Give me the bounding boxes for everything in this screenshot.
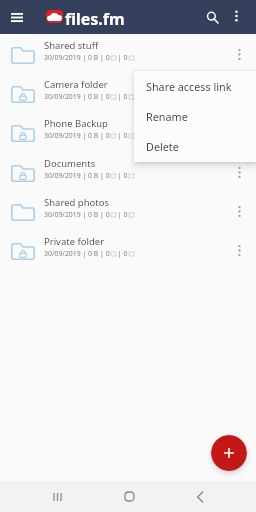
- staticText: Private folder: [44, 235, 105, 248]
- staticText: | 0: [116, 171, 128, 180]
- button[interactable]: More options: [223, 2, 250, 29]
- staticText: | 0: [116, 92, 128, 101]
- staticText: Rename: [146, 109, 188, 124]
- staticText: 30/09/2019 | 0 B | 0: [44, 131, 110, 140]
- button[interactable]: Shared stuff: [0, 34, 256, 73]
- button[interactable]: Phone Backup: [0, 112, 256, 151]
- staticText: Shared photos: [44, 196, 110, 209]
- staticText: | 0: [116, 131, 128, 140]
- button[interactable]: Share access link: [134, 71, 256, 101]
- button[interactable]: Item options: [228, 156, 250, 188]
- staticText: 30/09/2019 | 0 B | 0: [44, 210, 110, 219]
- button[interactable]: Back: [180, 481, 220, 512]
- button[interactable]: Home: [109, 481, 149, 512]
- button[interactable]: Item options: [228, 38, 250, 70]
- staticText: Share access link: [146, 79, 232, 94]
- staticText: Phone Backup: [44, 117, 108, 130]
- staticText: | 0: [116, 210, 128, 219]
- button[interactable]: Private folder: [0, 230, 256, 269]
- button[interactable]: Rename: [134, 101, 256, 131]
- button[interactable]: Camera folder: [0, 73, 256, 112]
- staticText: 30/09/2019 | 0 B | 0: [44, 92, 110, 101]
- button[interactable]: Item options: [228, 77, 250, 109]
- staticText: Documents: [44, 157, 96, 170]
- button[interactable]: Item options: [228, 234, 250, 266]
- button[interactable]: Delete: [134, 131, 256, 161]
- button[interactable]: Recents: [37, 481, 77, 512]
- button[interactable]: Shared photos: [0, 191, 256, 230]
- staticText: files.fm: [65, 8, 125, 30]
- staticText: 30/09/2019 | 0 B | 0: [44, 249, 110, 258]
- staticText: 30/09/2019 | 0 B | 0: [44, 171, 110, 180]
- staticText: Delete: [146, 139, 179, 154]
- button[interactable]: Item options: [228, 195, 250, 227]
- staticText: | 0: [116, 249, 128, 258]
- staticText: 30/09/2019 | 0 B | 0: [44, 53, 110, 62]
- button[interactable]: Add: [211, 435, 247, 471]
- staticText: Shared stuff: [44, 39, 99, 52]
- button[interactable]: Search: [197, 2, 227, 32]
- staticText: | 0: [116, 53, 128, 62]
- button[interactable]: Navigation drawer: [4, 0, 30, 34]
- button[interactable]: Documents: [0, 152, 256, 191]
- staticText: Camera folder: [44, 78, 108, 91]
